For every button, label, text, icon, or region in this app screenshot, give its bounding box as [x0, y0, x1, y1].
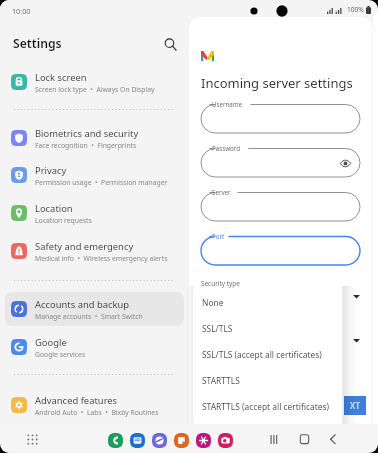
button[interactable]: Username [201, 99, 360, 133]
staticText: Username [212, 100, 243, 108]
button[interactable]: notes [174, 433, 189, 448]
button[interactable]: None [193, 289, 342, 315]
button[interactable]: Password [201, 143, 360, 177]
button[interactable]: Google [5, 330, 184, 364]
staticText: Password [212, 144, 240, 152]
staticText: SSL/TLS (accept all certificates) [202, 349, 322, 360]
staticText: SSL/TLS [202, 323, 233, 334]
button[interactable]: Home [295, 429, 315, 449]
button[interactable]: Search [159, 33, 181, 55]
button[interactable]: Privacy [5, 158, 184, 192]
button[interactable]: Server [201, 187, 360, 221]
staticText: Server [212, 188, 231, 196]
button[interactable]: star [196, 433, 211, 448]
button[interactable]: Port [201, 231, 360, 265]
staticText: Google [35, 336, 67, 349]
button[interactable]: XT [344, 396, 366, 415]
button[interactable]: STARTTLS (accept all certificates) [193, 393, 342, 419]
staticText: 10:00 [12, 6, 31, 16]
staticText: 100% [347, 5, 364, 14]
staticText: Accounts and backup [35, 298, 130, 311]
staticText: Advanced features [35, 394, 118, 407]
button[interactable]: msg [130, 433, 145, 448]
staticText: None [202, 297, 224, 308]
staticText: STARTTLS (accept all certificates) [202, 401, 330, 412]
button[interactable]: Location [5, 196, 184, 230]
button[interactable]: camera [218, 433, 233, 448]
staticText: Face recognition • Fingerprints [35, 141, 137, 150]
button[interactable]: Safety and emergency [5, 234, 184, 268]
staticText: Google services [35, 350, 86, 359]
button[interactable]: All apps [24, 431, 41, 448]
button[interactable]: Accounts and backup [5, 292, 184, 326]
staticText: Port [212, 232, 225, 240]
staticText: XT [350, 400, 360, 412]
staticText: Android Auto • Labs • Bixby Routines [35, 408, 159, 417]
staticText: Safety and emergency [35, 240, 134, 253]
staticText: Medical info • Wireless emergency alerts [35, 254, 168, 263]
button[interactable]: SSL/TLS [193, 315, 342, 341]
staticText: Location [35, 202, 73, 215]
button[interactable]: Advanced features [5, 388, 184, 422]
button[interactable]: Show password [338, 156, 352, 170]
staticText: Manage accounts • Smart Switch [35, 312, 143, 321]
button[interactable]: internet [152, 433, 167, 448]
button[interactable]: Recents [265, 429, 285, 449]
staticText: STARTTLS [202, 375, 240, 386]
staticText: Biometrics and security [35, 127, 139, 140]
button[interactable]: Biometrics and security [5, 121, 184, 155]
button[interactable]: SSL/TLS (accept all certificates) [193, 341, 342, 367]
button[interactable]: Lock screen [5, 65, 184, 99]
staticText: Screen lock type • Always On Display [35, 85, 155, 94]
button[interactable]: Back [325, 429, 345, 449]
staticText: Lock screen [35, 71, 87, 84]
button[interactable]: phone [108, 433, 123, 448]
staticText: Privacy [35, 164, 67, 177]
button[interactable]: STARTTLS [193, 367, 342, 393]
staticText: Security type [201, 279, 240, 288]
staticText: Incoming server settings [201, 74, 353, 92]
staticText: Location requests [35, 216, 92, 225]
staticText: Permission usage • Permission manager [35, 178, 168, 187]
staticText: Settings [13, 35, 62, 52]
